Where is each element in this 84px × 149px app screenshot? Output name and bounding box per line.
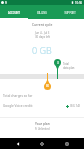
staticText: ($3.14) — [70, 104, 81, 108]
staticText: data plan — [63, 66, 75, 70]
staticText: Fi — [5, 1, 8, 5]
button[interactable]: Recents — [60, 138, 74, 149]
button[interactable]: Back — [11, 138, 25, 149]
staticText: $0 — [46, 84, 49, 88]
staticText: 10:56 — [75, 1, 83, 5]
staticText: ACCOUNT — [8, 11, 20, 14]
staticText: Fi Unlimited — [35, 127, 50, 131]
button[interactable]: Total charges so far — [0, 92, 84, 100]
staticText: Your plan — [35, 121, 50, 125]
staticText: BILLING — [37, 11, 47, 14]
staticText: Total charges so far — [3, 94, 33, 98]
staticText: Google Voice credit: — [3, 104, 33, 108]
staticText: Total — [63, 62, 69, 66]
staticText: 30 days left — [35, 35, 50, 39]
button[interactable]: ACCOUNT — [0, 5, 28, 19]
staticText: 3 — [57, 61, 59, 65]
staticText: 0 GB — [32, 44, 52, 56]
staticText: SUPPORT — [64, 11, 76, 14]
button[interactable]: Google Voice credit: — [0, 102, 84, 110]
staticText: Jun 4 - Jul 3 — [35, 31, 50, 35]
staticText: Current cycle — [32, 22, 53, 26]
button[interactable]: SUPPORT — [56, 5, 84, 19]
button[interactable]: Home — [35, 138, 49, 149]
button[interactable]: BILLING — [28, 5, 56, 19]
